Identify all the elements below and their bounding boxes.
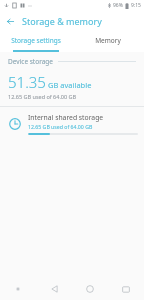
- button[interactable]: Recent apps: [108, 278, 144, 300]
- button[interactable]: Storage settings: [0, 31, 72, 50]
- staticText: 12.65 GB used of 64.00 GB: [28, 123, 93, 130]
- button[interactable]: Back: [36, 278, 72, 300]
- button[interactable]: Home: [72, 278, 108, 300]
- staticText: GB available: [48, 80, 92, 90]
- staticText: 9:15: [131, 2, 141, 9]
- staticText: Storage settings: [11, 36, 61, 45]
- staticText: Storage & memory: [22, 15, 102, 27]
- staticText: Device storage: [8, 57, 53, 66]
- staticText: 51.35: [8, 72, 46, 92]
- staticText: 12.65 GB used of 64.00 GB: [8, 93, 77, 100]
- button[interactable]: Hide keyboard: [0, 278, 36, 300]
- button[interactable]: Memory: [72, 31, 144, 50]
- staticText: 96%: [113, 2, 123, 9]
- staticText: Internal shared storage: [28, 113, 104, 122]
- button[interactable]: Back: [0, 11, 20, 31]
- button[interactable]: Internal shared storage: [0, 107, 144, 140]
- staticText: Memory: [95, 36, 121, 45]
